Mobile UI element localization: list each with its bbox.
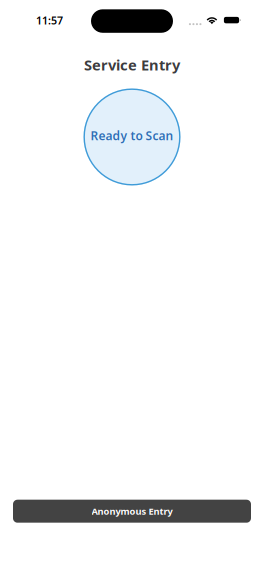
staticText: Service Entry <box>84 55 180 74</box>
staticText: 11:57 <box>36 13 63 27</box>
staticText: Anonymous Entry <box>91 505 172 517</box>
staticText: Ready to Scan <box>90 127 173 143</box>
button[interactable]: Anonymous Entry <box>13 500 251 523</box>
button[interactable]: Ready to Scan <box>83 88 180 185</box>
